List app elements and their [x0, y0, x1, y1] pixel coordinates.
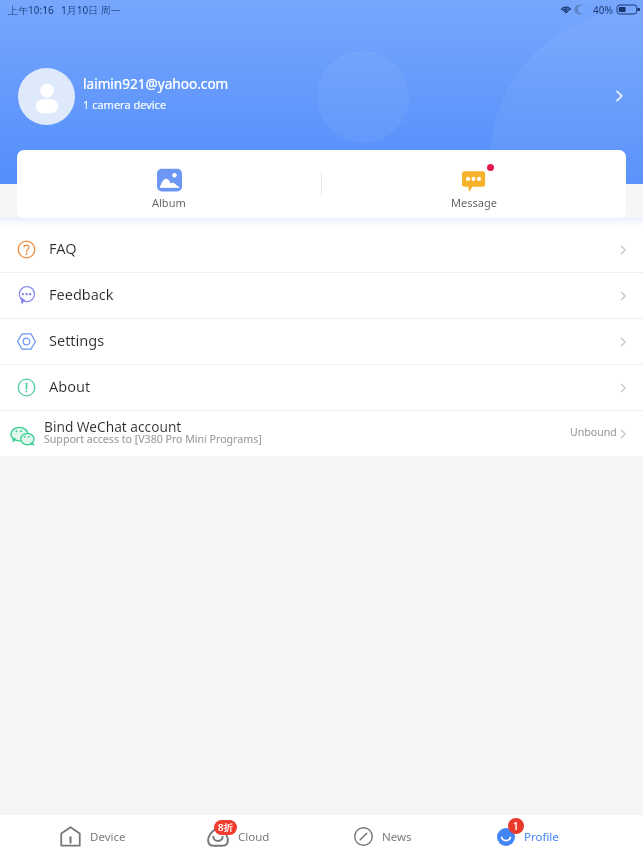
staticText: Unbound [570, 425, 617, 439]
staticText: Feedback [49, 284, 114, 304]
staticText: Bind WeChat account [44, 417, 182, 436]
staticText: 40% [593, 3, 613, 17]
button[interactable]: 8折 [165, 815, 310, 858]
button[interactable]: laimin921@yahoo.com [0, 54, 643, 138]
staticText: FAQ [49, 238, 77, 258]
staticText: laimin921@yahoo.com [83, 74, 229, 93]
staticText: Cloud [238, 829, 270, 845]
button[interactable]: Album [17, 150, 321, 218]
staticText: Album [152, 195, 186, 210]
button[interactable]: Device [20, 815, 165, 858]
button[interactable]: News [310, 815, 455, 858]
staticText: News [382, 829, 412, 845]
button[interactable]: FAQ [0, 227, 643, 272]
other: Account details [609, 86, 629, 106]
staticText: Device [90, 829, 126, 845]
button[interactable]: Settings [0, 319, 643, 364]
staticText: Settings [49, 330, 105, 350]
staticText: 上午10:16 [8, 3, 54, 17]
staticText: Support access to [V380 Pro Mini Program… [44, 432, 262, 446]
button[interactable]: 1 [455, 815, 600, 858]
staticText: Profile [524, 829, 559, 845]
staticText: 1月10日 周一 [61, 3, 121, 17]
button[interactable]: Message [322, 150, 626, 218]
button[interactable]: Feedback [0, 273, 643, 318]
staticText: Message [451, 195, 497, 210]
staticText: 1 [513, 819, 519, 833]
staticText: 8折 [218, 821, 233, 834]
staticText: About [49, 376, 91, 396]
staticText: 1 camera device [83, 97, 167, 112]
button[interactable]: About [0, 365, 643, 410]
button[interactable]: Bind WeChat account [0, 411, 643, 456]
